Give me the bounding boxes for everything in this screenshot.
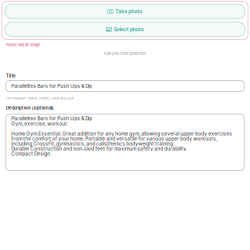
staticText: Select photo [114,26,144,32]
staticText: Parallettes Bars for Push Ups & Dip [11,83,92,89]
button[interactable]: Parallettes Bars for Push Ups & Dip Gym,… [6,114,244,171]
button[interactable]: Parallettes Bars for Push Ups & Dip [6,80,244,91]
staticText: Parallettes Bars for Push Ups & Dip Gym,… [11,116,232,157]
staticText: For example: Brand, model, color and siz… [6,96,74,100]
staticText: Take photo [115,8,142,14]
staticText: Description (optional) [6,105,54,111]
staticText: Add your cover photo first. [103,51,146,56]
staticText: Title [6,73,16,79]
button[interactable]: Select photo [5,22,245,37]
button[interactable]: Take photo [5,4,245,19]
staticText: Please add an image [6,43,40,47]
